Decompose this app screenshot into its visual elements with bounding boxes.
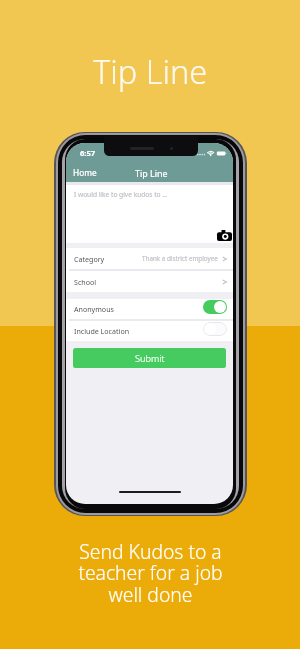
staticText: Submit bbox=[135, 352, 165, 365]
staticText: Category bbox=[74, 254, 105, 264]
staticText: Thank a district employee bbox=[142, 254, 218, 263]
staticText: 6:57 bbox=[80, 148, 96, 158]
staticText: Tip Line bbox=[135, 167, 168, 179]
button[interactable]: Category bbox=[66, 248, 233, 269]
staticText: Include Location bbox=[74, 326, 130, 336]
staticText: Anonymous bbox=[74, 304, 114, 314]
button[interactable]: Anonymous bbox=[66, 299, 233, 319]
button[interactable]: Home bbox=[66, 164, 103, 181]
button[interactable]: Attach photo bbox=[215, 225, 233, 243]
staticText: Tip Line bbox=[93, 49, 208, 93]
button[interactable]: Include Location bbox=[66, 321, 233, 341]
staticText: Send Kudos to a teacher for a job well d… bbox=[78, 538, 223, 608]
staticText: I would like to give kudos to ... bbox=[74, 190, 168, 199]
staticText: Home bbox=[73, 167, 97, 178]
button[interactable]: Submit bbox=[73, 348, 226, 368]
staticText: School bbox=[74, 277, 97, 287]
button[interactable]: School bbox=[66, 271, 233, 292]
